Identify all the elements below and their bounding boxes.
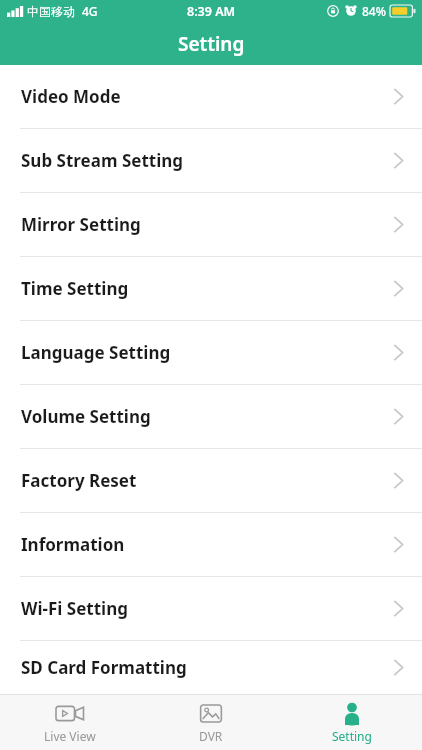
staticText: SD Card Formatting: [21, 656, 393, 679]
button[interactable]: Information: [0, 513, 422, 576]
staticText: Volume Setting: [21, 405, 393, 428]
staticText: 84%: [362, 3, 386, 19]
button[interactable]: Mirror Setting: [0, 193, 422, 256]
staticText: Wi-Fi Setting: [21, 597, 393, 620]
button[interactable]: Time Setting: [0, 257, 422, 320]
button[interactable]: Wi-Fi Setting: [0, 577, 422, 640]
button[interactable]: Video Mode: [0, 65, 422, 128]
button[interactable]: Language Setting: [0, 321, 422, 384]
staticText: DVR: [199, 728, 223, 744]
staticText: Information: [21, 533, 393, 556]
staticText: Video Mode: [21, 85, 393, 108]
button[interactable]: SD Card Formatting: [0, 641, 422, 694]
button[interactable]: Factory Reset: [0, 449, 422, 512]
staticText: Setting: [178, 31, 245, 57]
staticText: 中国移动: [27, 4, 75, 19]
staticText: Language Setting: [21, 341, 393, 364]
button[interactable]: DVR: [140, 695, 281, 750]
button[interactable]: Sub Stream Setting: [0, 129, 422, 192]
staticText: Live View: [44, 728, 96, 744]
button[interactable]: Live View: [0, 695, 140, 750]
button[interactable]: Volume Setting: [0, 385, 422, 448]
staticText: Setting: [332, 728, 372, 744]
staticText: 4G: [82, 3, 98, 19]
staticText: Mirror Setting: [21, 213, 393, 236]
staticText: Time Setting: [21, 277, 393, 300]
button[interactable]: Setting: [281, 695, 422, 750]
staticText: 8:39 AM: [187, 3, 236, 20]
staticText: Factory Reset: [21, 469, 393, 492]
staticText: Sub Stream Setting: [21, 149, 393, 172]
